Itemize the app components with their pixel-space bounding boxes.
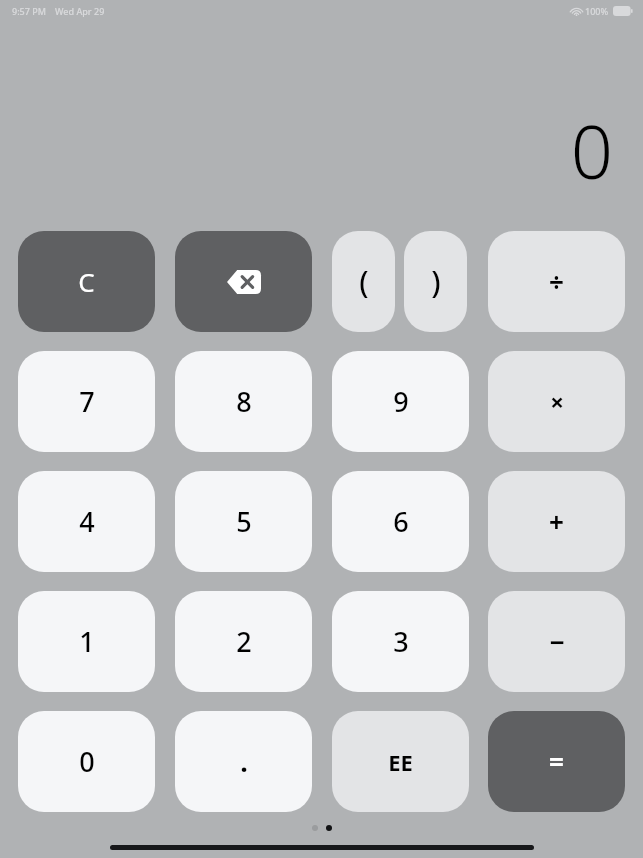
staticText: EE bbox=[388, 747, 413, 777]
staticText: 6 bbox=[393, 503, 409, 540]
button[interactable]: + bbox=[488, 471, 625, 572]
staticText: 3 bbox=[393, 623, 409, 660]
staticText: = bbox=[549, 744, 564, 779]
staticText: C bbox=[78, 264, 95, 299]
staticText: ÷ bbox=[549, 264, 564, 299]
button[interactable]: 6 bbox=[332, 471, 469, 572]
staticText: + bbox=[549, 504, 564, 539]
staticText: 9 bbox=[393, 383, 409, 420]
staticText: 2 bbox=[236, 623, 252, 660]
staticText: 5 bbox=[236, 503, 252, 540]
button[interactable]: × bbox=[488, 351, 625, 452]
staticText: 0 bbox=[570, 100, 613, 201]
button[interactable]: 7 bbox=[18, 351, 155, 452]
staticText: × bbox=[550, 385, 564, 418]
button[interactable]: ) bbox=[404, 231, 467, 332]
button[interactable]: C bbox=[18, 231, 155, 332]
button[interactable]: ÷ bbox=[488, 231, 625, 332]
button[interactable]: 1 bbox=[18, 591, 155, 692]
button[interactable]: ( bbox=[332, 231, 395, 332]
button[interactable]: 4 bbox=[18, 471, 155, 572]
button[interactable]: 8 bbox=[175, 351, 312, 452]
staticText: 100% bbox=[585, 5, 609, 17]
staticText: ( bbox=[359, 261, 369, 302]
staticText: ) bbox=[431, 261, 441, 302]
staticText: 0 bbox=[79, 743, 95, 780]
button[interactable]: 5 bbox=[175, 471, 312, 572]
button[interactable]: 9 bbox=[332, 351, 469, 452]
staticText: 7 bbox=[79, 383, 95, 420]
button[interactable]: 2 bbox=[175, 591, 312, 692]
button[interactable]: 3 bbox=[332, 591, 469, 692]
staticText: − bbox=[549, 624, 565, 659]
button[interactable]: 0 bbox=[18, 711, 155, 812]
staticText: 9:57 PM bbox=[12, 5, 46, 17]
button[interactable]: − bbox=[488, 591, 625, 692]
staticText: . bbox=[240, 743, 248, 780]
button[interactable]: Backspace bbox=[175, 231, 312, 332]
staticText: Wed Apr 29 bbox=[55, 5, 105, 17]
staticText: 1 bbox=[79, 623, 95, 660]
button[interactable]: EE bbox=[332, 711, 469, 812]
staticText: 4 bbox=[79, 503, 95, 540]
button[interactable]: . bbox=[175, 711, 312, 812]
staticText: 8 bbox=[236, 383, 252, 420]
button[interactable]: = bbox=[488, 711, 625, 812]
